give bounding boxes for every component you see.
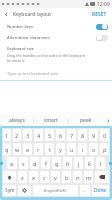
staticText: Number keys <box>7 24 34 30</box>
button[interactable]: y <box>56 143 65 155</box>
button[interactable]: More suggestions <box>103 115 112 126</box>
button[interactable]: Alternative characters <box>0 32 112 43</box>
button[interactable]: 4 <box>34 129 43 141</box>
staticText: RESET <box>92 11 107 18</box>
button[interactable]: u <box>67 143 76 155</box>
staticText: smart <box>44 117 58 124</box>
button[interactable]: i <box>78 143 87 155</box>
button[interactable]: . <box>80 185 90 196</box>
staticText: x <box>32 174 35 181</box>
button[interactable]: g <box>52 157 61 169</box>
button[interactable]: e <box>23 143 32 155</box>
button[interactable]: smart <box>34 115 68 126</box>
staticText: Alternative characters <box>7 35 51 41</box>
button[interactable]: peek <box>69 115 103 126</box>
staticText: Drag the handles on the sides of the key… <box>7 53 86 63</box>
staticText: English(UK) <box>44 188 67 194</box>
button[interactable]: Sym <box>3 185 16 196</box>
staticText: t <box>49 146 51 153</box>
staticText: 9 <box>92 132 96 139</box>
button[interactable]: Shift <box>3 171 16 183</box>
staticText: b <box>65 174 69 181</box>
staticText: u <box>70 146 74 153</box>
staticText: 12:09 <box>97 1 110 8</box>
staticText: Keyboard size <box>7 46 35 52</box>
button[interactable]: Settings <box>18 185 31 196</box>
button[interactable]: v <box>51 171 60 183</box>
button[interactable]: d <box>30 157 39 169</box>
staticText: w <box>15 146 20 153</box>
staticText: o <box>92 146 96 153</box>
staticText: 4 <box>37 132 41 139</box>
button[interactable]: 3 <box>23 129 32 141</box>
staticText: Done <box>94 187 107 194</box>
staticText: k <box>88 160 91 167</box>
staticText: 6 <box>59 132 63 139</box>
staticText: Keyboard layout <box>13 11 52 18</box>
button[interactable]: a <box>7 157 17 169</box>
button[interactable]: x <box>29 171 38 183</box>
staticText: i <box>82 146 84 153</box>
button[interactable]: Backspace <box>95 171 109 183</box>
staticText: f <box>45 160 47 167</box>
button[interactable]: s <box>19 157 28 169</box>
button[interactable]: RESET <box>87 8 112 21</box>
staticText: g <box>55 160 59 167</box>
staticText: p <box>103 146 107 153</box>
button[interactable]: 5 <box>45 129 54 141</box>
button[interactable]: b <box>62 171 71 183</box>
button[interactable]: p <box>100 143 109 155</box>
button[interactable]: 9 <box>89 129 98 141</box>
button[interactable]: 2 <box>13 129 21 141</box>
staticText: n <box>76 174 80 181</box>
staticText: j <box>78 160 80 167</box>
button[interactable]: l <box>96 157 105 169</box>
staticText: d <box>33 160 37 167</box>
button[interactable]: q <box>3 143 11 155</box>
staticText: . <box>84 187 86 194</box>
button[interactable]: 7 <box>67 129 76 141</box>
button[interactable]: h <box>63 157 72 169</box>
staticText: 5 <box>48 132 52 139</box>
button[interactable]: j <box>74 157 83 169</box>
button[interactable]: Done <box>92 185 109 196</box>
button[interactable]: c <box>40 171 49 183</box>
staticText: 2 <box>15 132 19 139</box>
staticText: h <box>66 160 70 167</box>
staticText: s <box>22 160 25 167</box>
staticText: l <box>100 160 102 167</box>
button[interactable]: r <box>34 143 43 155</box>
button[interactable]: 0 <box>100 129 109 141</box>
staticText: v <box>54 174 57 181</box>
staticText: e <box>26 146 30 153</box>
staticText: 7 <box>70 132 74 139</box>
staticText: Type to test keyboard size <box>7 71 58 77</box>
staticText: r <box>37 146 40 153</box>
staticText: 3 <box>26 132 30 139</box>
staticText: always <box>9 117 25 124</box>
button[interactable]: m <box>84 171 93 183</box>
button[interactable]: Back <box>0 8 13 21</box>
button[interactable]: 6 <box>56 129 65 141</box>
button[interactable]: k <box>85 157 94 169</box>
button[interactable]: z <box>18 171 27 183</box>
button[interactable]: English(UK) <box>33 185 78 196</box>
button[interactable]: t <box>45 143 54 155</box>
button[interactable]: o <box>89 143 98 155</box>
button[interactable]: w <box>13 143 21 155</box>
button[interactable]: n <box>73 171 82 183</box>
button[interactable]: 8 <box>78 129 87 141</box>
button[interactable]: 1 <box>3 129 11 141</box>
staticText: 0 <box>103 132 107 139</box>
button[interactable]: Resize keyboard right <box>109 162 112 165</box>
staticText: y <box>59 146 62 153</box>
button[interactable]: f <box>41 157 50 169</box>
button[interactable]: Resize keyboard left <box>0 162 3 165</box>
staticText: m <box>86 174 92 181</box>
staticText: 8 <box>81 132 85 139</box>
staticText: c <box>43 174 46 181</box>
button[interactable]: always <box>0 115 33 126</box>
button[interactable]: Number keys <box>0 21 112 32</box>
staticText: Sym <box>5 187 15 194</box>
staticText: 1 <box>5 132 9 139</box>
